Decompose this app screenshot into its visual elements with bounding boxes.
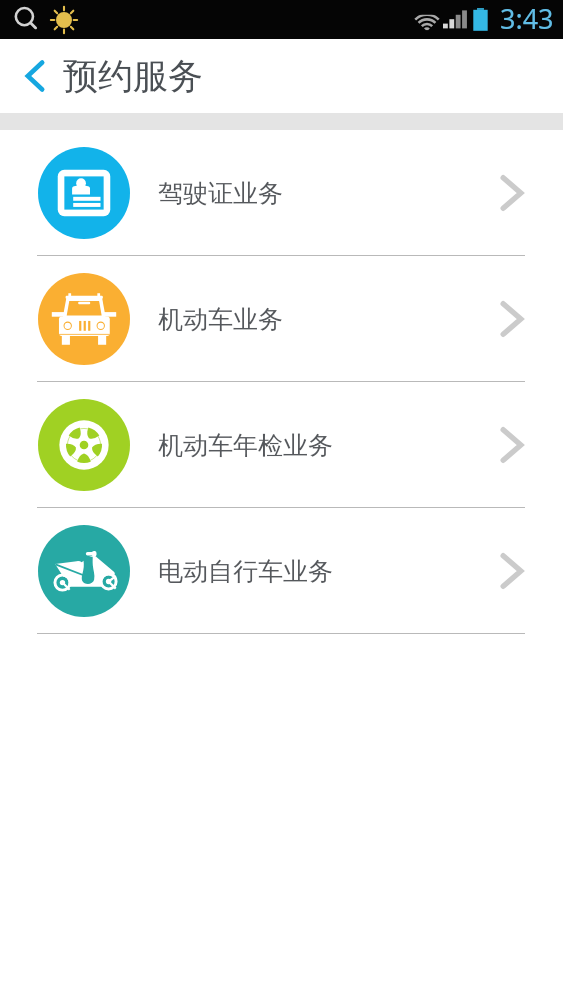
button[interactable]: Back <box>0 39 70 113</box>
button[interactable]: 机动车业务 <box>0 256 563 382</box>
staticText: 3:43 <box>500 0 554 37</box>
staticText: 电动自行车业务 <box>158 556 333 587</box>
staticText: 驾驶证业务 <box>158 178 283 209</box>
staticText: 预约服务 <box>63 54 203 98</box>
button[interactable]: 电动自行车业务 <box>0 508 563 634</box>
staticText: 机动车年检业务 <box>158 430 333 461</box>
staticText: 机动车业务 <box>158 304 283 335</box>
button[interactable]: 机动车年检业务 <box>0 382 563 508</box>
button[interactable]: 驾驶证业务 <box>0 130 563 256</box>
